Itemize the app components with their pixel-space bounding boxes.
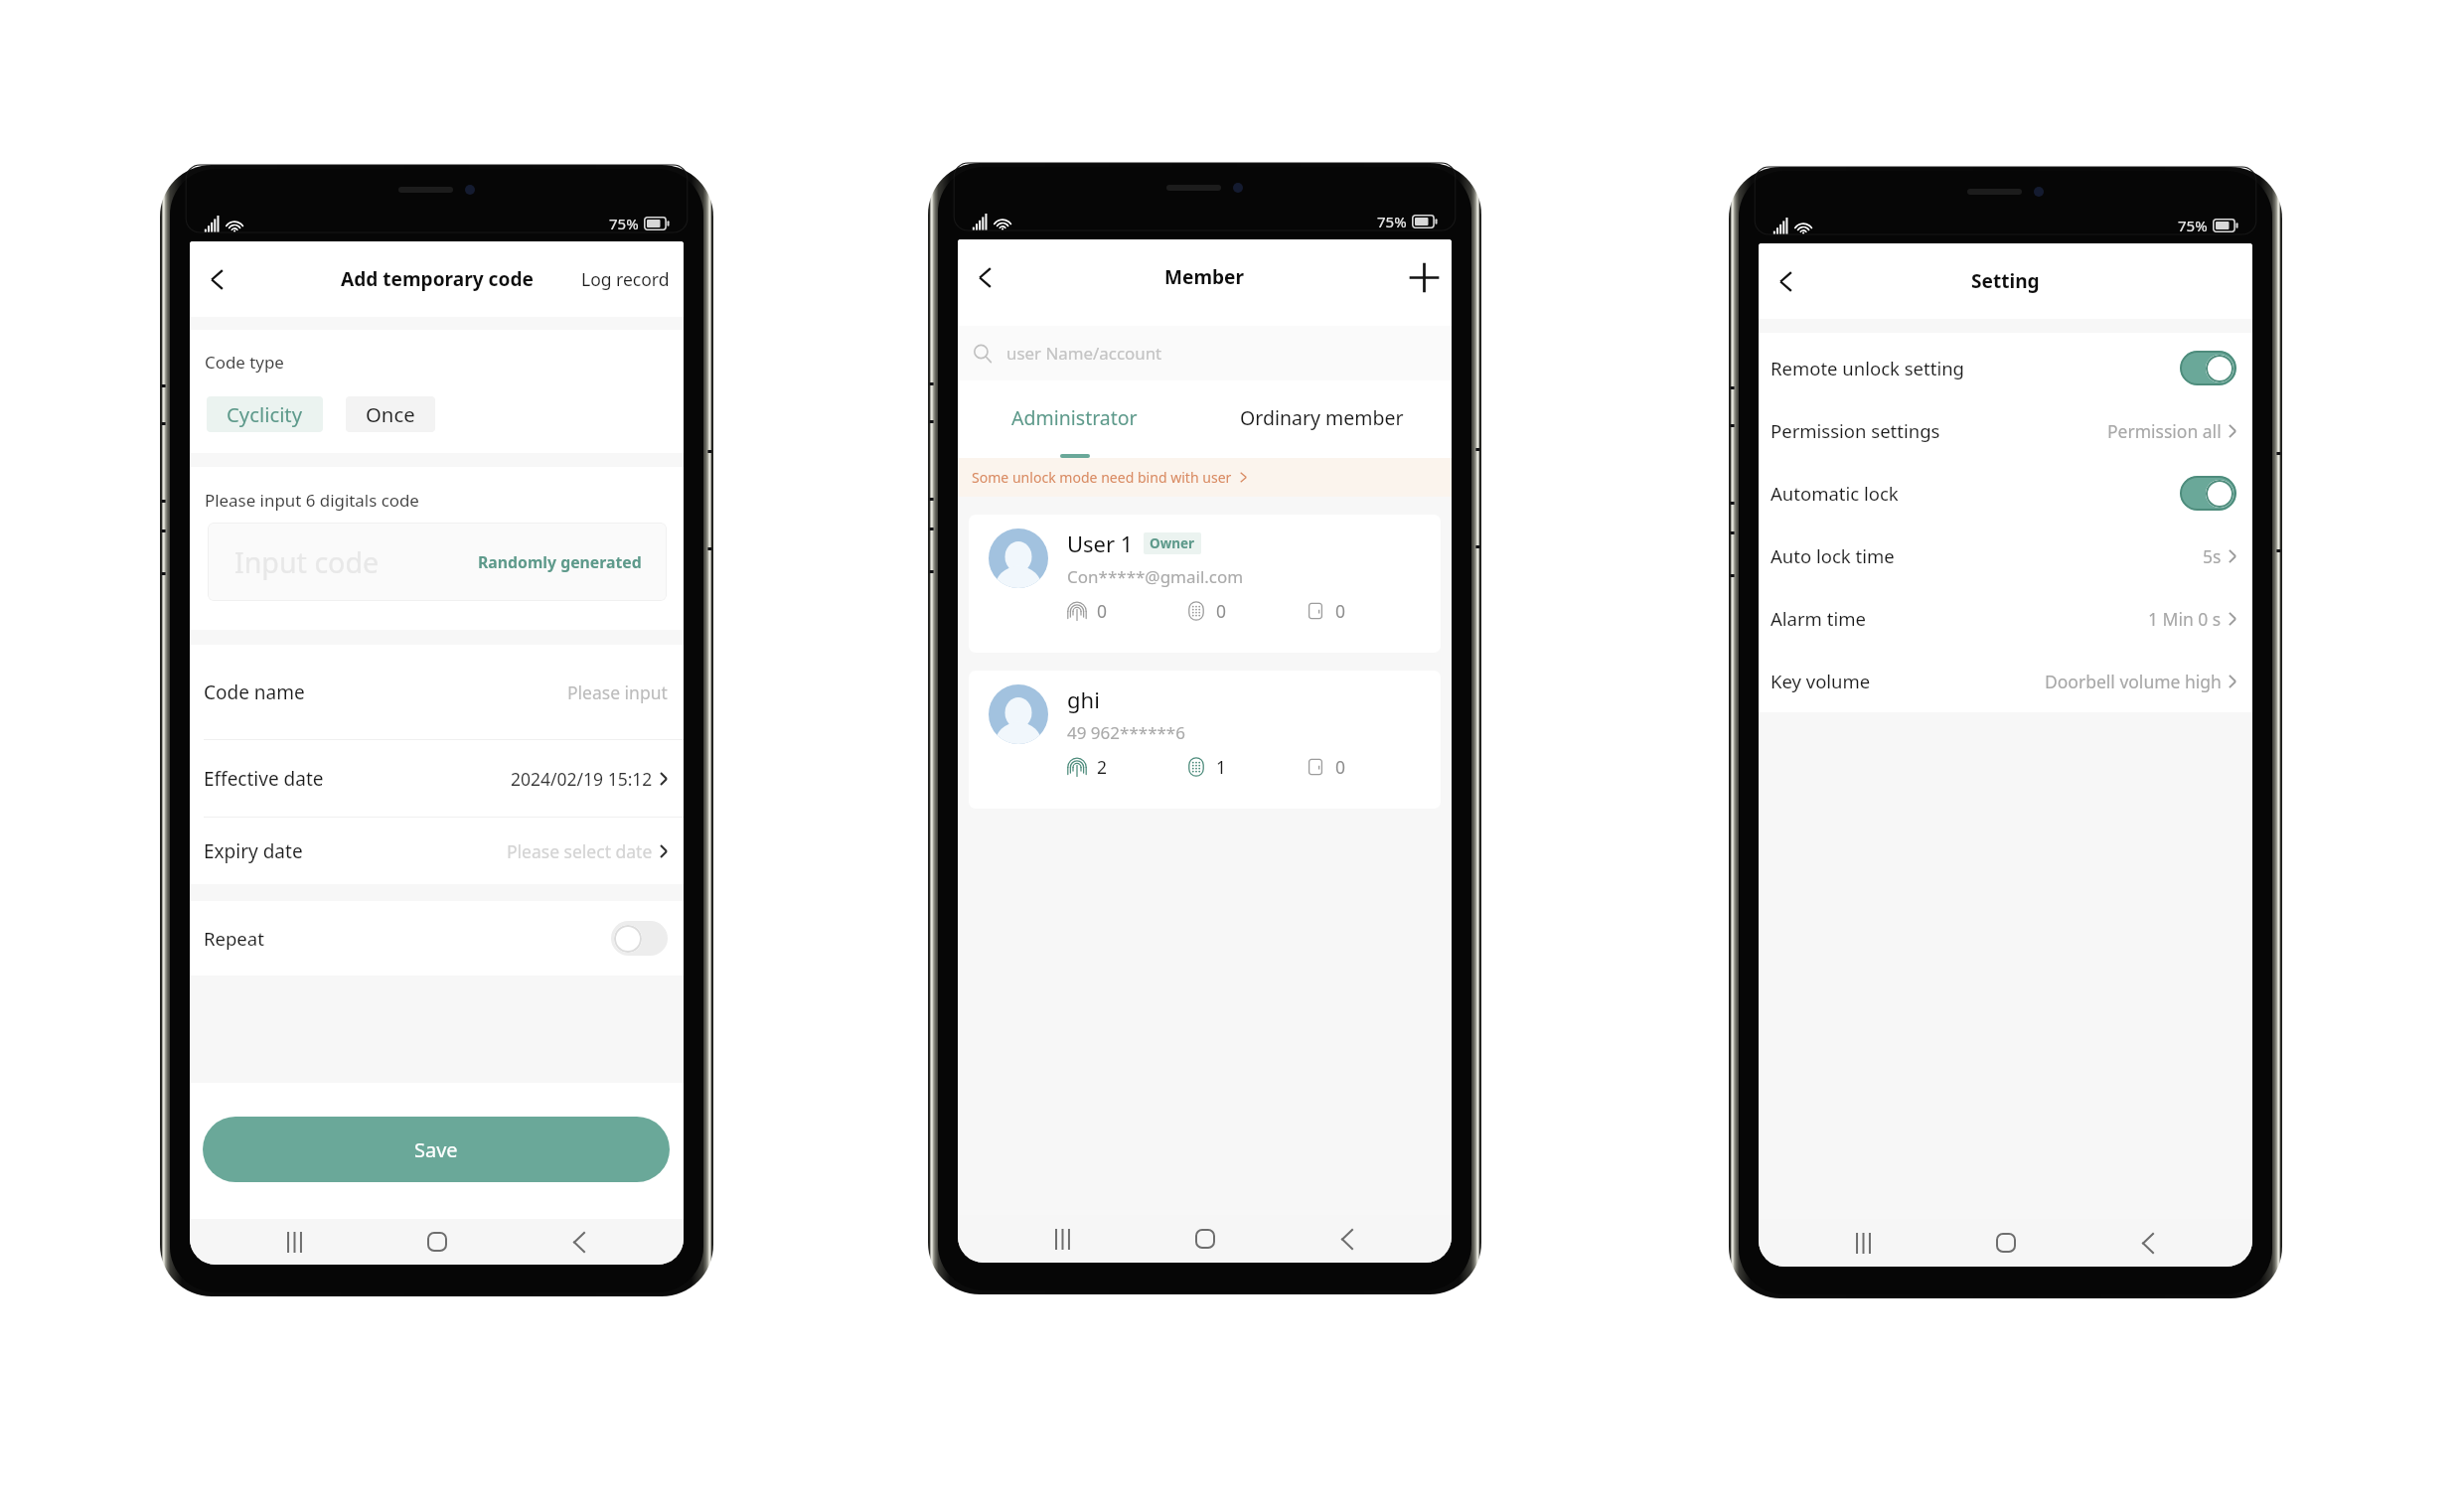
staticText: Some unlock mode need bind with user	[972, 468, 1232, 487]
staticText: Cyclicity	[227, 400, 303, 428]
staticText: Effective date	[204, 766, 324, 792]
staticText: Permission settings	[1771, 418, 1940, 443]
staticText: 75%	[609, 214, 639, 233]
button[interactable]: Cyclicity	[207, 396, 323, 432]
staticText: Alarm time	[1771, 606, 1866, 631]
staticText: Remote unlock setting	[1771, 356, 1964, 380]
staticText: Member	[1164, 264, 1245, 290]
staticText: 5s	[2203, 544, 2222, 568]
button[interactable]: Code name	[190, 645, 684, 739]
staticText: 49 962******6	[1067, 721, 1185, 744]
button[interactable]: Input code	[208, 523, 667, 601]
staticText: Doorbell volume high	[2045, 670, 2222, 693]
button[interactable]: Repeat	[190, 901, 684, 976]
staticText: 75%	[2178, 216, 2208, 235]
staticText: 1	[1216, 755, 1227, 779]
button[interactable]: Once	[346, 396, 435, 432]
staticText: Code name	[204, 679, 305, 705]
staticText: 0	[1097, 599, 1108, 623]
staticText: 0	[1335, 755, 1346, 779]
staticText: Repeat	[204, 926, 264, 951]
button[interactable]: Alarm time	[1759, 587, 2252, 650]
button[interactable]: Back	[1329, 1221, 1365, 1257]
button[interactable]: Save	[203, 1117, 670, 1182]
staticText: Setting	[1971, 268, 2040, 294]
button[interactable]: User 1	[969, 515, 1441, 653]
staticText: 0	[1335, 599, 1346, 623]
button[interactable]: Auto lock time	[1759, 525, 2252, 587]
button[interactable]: Recent apps	[1845, 1225, 1881, 1261]
button[interactable]: Automatic lock	[1759, 462, 2252, 525]
button[interactable]: Toggle	[2180, 476, 2236, 511]
button[interactable]: Back	[561, 1224, 597, 1260]
button[interactable]: Recent apps	[1044, 1221, 1080, 1257]
staticText: Please input	[567, 680, 668, 704]
button[interactable]: Key volume	[1759, 650, 2252, 712]
button[interactable]: Some unlock mode need bind with user	[958, 458, 1452, 497]
button[interactable]: Toggle	[2180, 351, 2236, 385]
button[interactable]: Add member	[1396, 239, 1452, 315]
staticText: Owner	[1150, 534, 1195, 552]
staticText: Auto lock time	[1771, 543, 1895, 568]
button[interactable]: Toggle	[611, 921, 668, 956]
button[interactable]: Expiry date	[190, 818, 684, 884]
staticText: Automatic lock	[1771, 481, 1899, 506]
staticText: Code type	[205, 351, 284, 374]
staticText: 2	[1097, 755, 1108, 779]
button[interactable]: Log record	[567, 241, 684, 317]
staticText: Randomly generated	[478, 551, 642, 573]
button[interactable]: ghi	[969, 671, 1441, 809]
staticText: Once	[366, 400, 415, 428]
button[interactable]: user Name/account	[958, 326, 1452, 380]
button[interactable]: Home	[1187, 1221, 1223, 1257]
button[interactable]: Back	[1759, 243, 1812, 319]
staticText: Please select date	[507, 839, 653, 863]
staticText: 0	[1216, 599, 1227, 623]
button[interactable]: Ordinary member	[1191, 380, 1452, 454]
staticText: Permission all	[2107, 419, 2222, 443]
button[interactable]: Remote unlock setting	[1759, 337, 2252, 399]
button[interactable]: Home	[419, 1224, 455, 1260]
button[interactable]: Home	[1988, 1225, 2024, 1261]
button[interactable]: Back	[958, 239, 1011, 315]
staticText: Ordinary member	[1240, 404, 1404, 431]
staticText: user Name/account	[1006, 342, 1162, 365]
staticText: Administrator	[1011, 404, 1138, 431]
staticText: Log record	[581, 267, 670, 291]
staticText: User 1	[1067, 528, 1134, 558]
staticText: 2024/02/19 15:12	[511, 767, 653, 791]
button[interactable]: Recent apps	[276, 1224, 312, 1260]
staticText: Input code	[234, 542, 380, 581]
staticText: Please input 6 digitals code	[205, 489, 419, 512]
staticText: 75%	[1377, 212, 1407, 231]
button[interactable]: Administrator	[958, 380, 1191, 454]
button[interactable]: Effective date	[190, 740, 684, 817]
staticText: Save	[414, 1136, 458, 1163]
staticText: 1 Min 0 s	[2148, 607, 2222, 631]
staticText: Key volume	[1771, 669, 1871, 693]
button[interactable]: Permission settings	[1759, 399, 2252, 462]
button[interactable]: Back	[190, 241, 243, 317]
staticText: ghi	[1067, 684, 1100, 714]
button[interactable]: Back	[2130, 1225, 2166, 1261]
staticText: Add temporary code	[341, 266, 534, 292]
staticText: Expiry date	[204, 838, 303, 864]
staticText: Con*****@gmail.com	[1067, 565, 1244, 588]
